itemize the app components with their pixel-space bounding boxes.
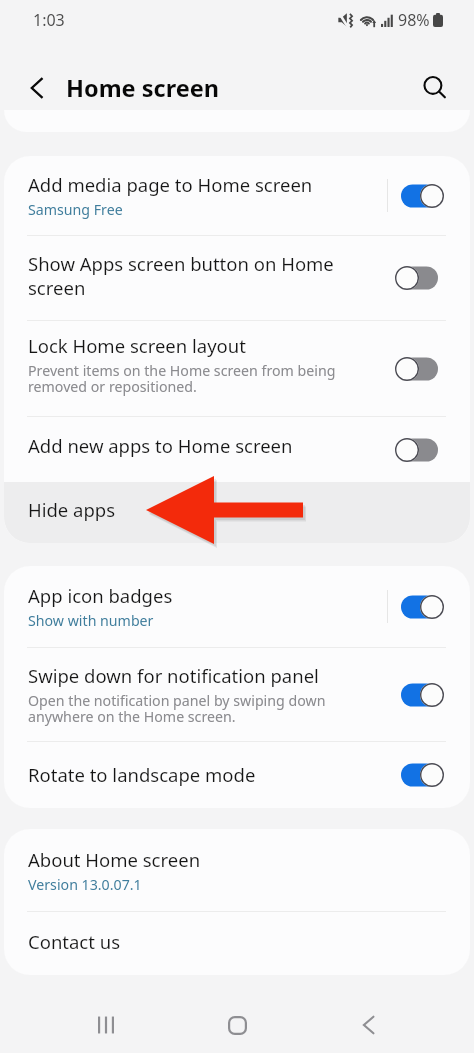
staticText: Contact us	[28, 930, 121, 954]
button[interactable]: Navigate up	[14, 66, 60, 110]
staticText: Show Apps screen button on Home screen	[28, 252, 381, 300]
button[interactable]: On	[397, 678, 445, 712]
button[interactable]: Recent apps	[40, 997, 172, 1053]
button[interactable]: Off	[397, 433, 445, 467]
button[interactable]: Home	[172, 997, 303, 1053]
staticText: About Home screen	[28, 848, 201, 872]
staticText: Samsung Free	[28, 202, 123, 218]
button[interactable]: On	[397, 758, 445, 792]
button[interactable]: Rotate to landscape mode	[4, 742, 470, 808]
staticText: Show with number	[28, 613, 154, 629]
staticText: Add new apps to Home screen	[28, 434, 293, 458]
button[interactable]: Add media page to Home screen	[4, 156, 470, 235]
staticText: Add media page to Home screen	[28, 173, 313, 197]
button[interactable]: Back	[303, 997, 434, 1053]
button[interactable]: On	[397, 590, 445, 624]
button[interactable]: About Home screen	[4, 829, 470, 911]
button[interactable]: Hide apps	[4, 482, 470, 543]
staticText: 98%	[398, 9, 430, 31]
button[interactable]: App icon badges	[4, 566, 470, 647]
button[interactable]: Search	[412, 66, 458, 110]
button[interactable]: Show Apps screen button on Home screen	[4, 236, 470, 320]
staticText: Open the notification panel by swiping d…	[28, 693, 381, 725]
button[interactable]: Contact us	[4, 912, 470, 975]
staticText: Lock Home screen layout	[28, 334, 246, 358]
staticText: Swipe down for notification panel	[28, 664, 319, 688]
staticText: Prevent items on the Home screen from be…	[28, 363, 381, 395]
button[interactable]: On	[397, 179, 445, 213]
staticText: 1:03	[33, 9, 65, 31]
staticText: Version 13.0.07.1	[28, 877, 142, 893]
button[interactable]: Swipe down for notification panel	[4, 648, 470, 741]
button[interactable]: Off	[397, 261, 445, 295]
button[interactable]: Add new apps to Home screen	[4, 417, 470, 482]
button[interactable]: Off	[397, 352, 445, 386]
staticText: Home screen	[66, 72, 220, 104]
staticText: Rotate to landscape mode	[28, 763, 256, 787]
button[interactable]: Lock Home screen layout	[4, 321, 470, 416]
staticText: App icon badges	[28, 584, 173, 608]
staticText: Hide apps	[28, 498, 116, 522]
